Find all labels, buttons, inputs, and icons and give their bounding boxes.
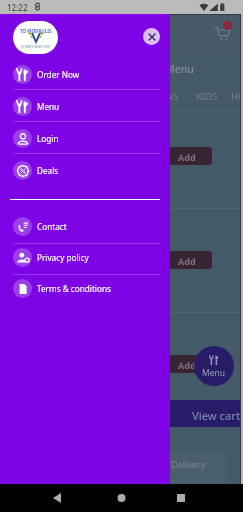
staticText: Order Now (37, 69, 80, 80)
staticText: Add (178, 359, 196, 371)
staticText: Menu (165, 62, 194, 76)
staticText: 12:22 (7, 2, 28, 13)
staticText: Terms & conditions (37, 283, 111, 294)
button[interactable]: View cart (0, 400, 243, 427)
staticText: NS (166, 90, 179, 103)
button[interactable]: Add (163, 147, 212, 165)
staticText: Add (178, 255, 196, 267)
button[interactable]: Login (0, 123, 170, 154)
staticText: TO MODRULIS (20, 28, 52, 34)
staticText: Contact (37, 221, 67, 232)
staticText: View cart (192, 408, 241, 423)
button[interactable]: Deals (0, 155, 170, 186)
button[interactable]: Terms & conditions (0, 273, 170, 304)
staticText: Deals (37, 165, 59, 176)
button[interactable]: Contact (0, 211, 170, 242)
button[interactable]: Privacy policy (0, 242, 170, 273)
staticText: Delivery (171, 458, 206, 470)
button[interactable]: Add (163, 355, 212, 373)
staticText: Privacy policy (37, 252, 89, 263)
button[interactable]: Cart (212, 24, 232, 44)
button[interactable]: Order Now (0, 59, 170, 90)
staticText: Menu (37, 101, 60, 112)
button[interactable]: Add (163, 251, 212, 269)
button[interactable]: Close (143, 28, 160, 45)
button[interactable]: Menu (194, 346, 234, 386)
staticText: KIDS (196, 90, 218, 103)
staticText: Add (178, 151, 196, 163)
button[interactable]: Menu (0, 91, 170, 122)
staticText: HOT (231, 90, 243, 103)
staticText: Menu (202, 367, 226, 379)
button[interactable]: Delivery (120, 451, 227, 485)
staticText: ULTIMATE GREEK FOOD (21, 45, 50, 49)
staticText: 0 (226, 22, 230, 30)
staticText: Login (37, 133, 59, 144)
